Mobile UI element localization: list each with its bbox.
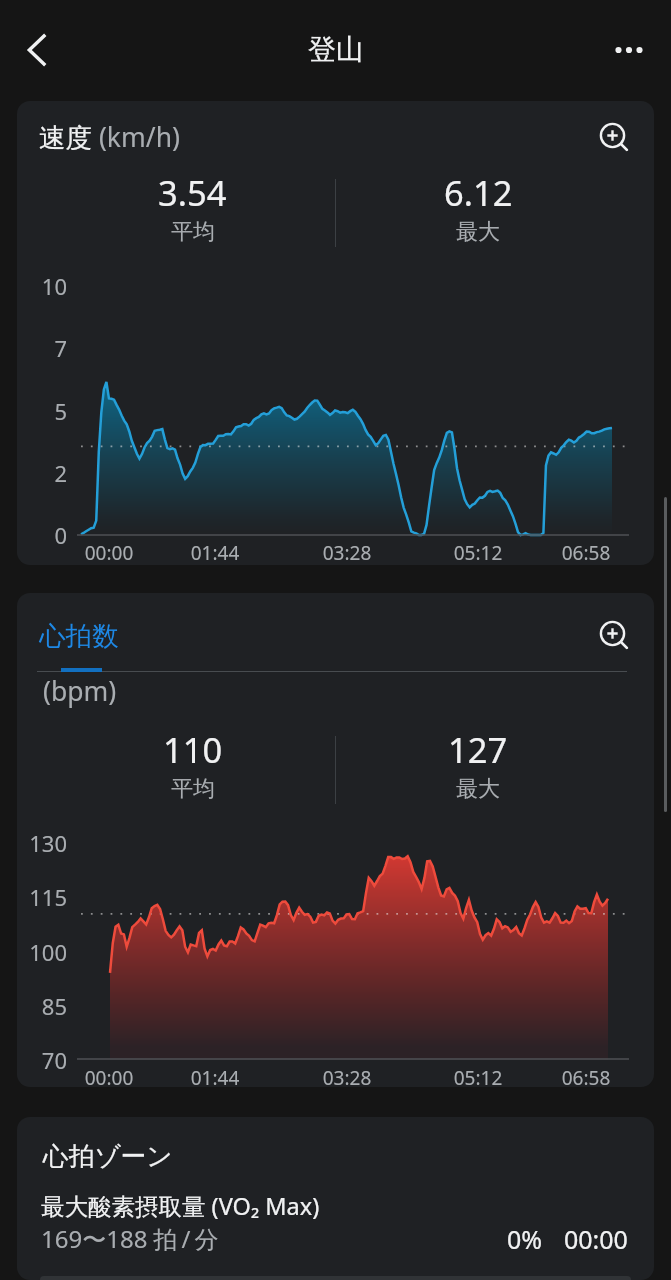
staticText: 70 <box>25 1045 67 1075</box>
staticText: 00:00 <box>69 540 149 565</box>
staticText: 0 <box>25 520 67 550</box>
staticText: 100 <box>25 937 67 967</box>
staticText: 最大 <box>456 775 500 803</box>
staticText: 169〜188 拍 / 分 <box>41 1222 219 1255</box>
staticText: 03:28 <box>307 1065 387 1087</box>
staticText: 127 <box>448 726 508 773</box>
staticText: 06:58 <box>546 540 626 565</box>
staticText: 03:28 <box>307 540 387 565</box>
staticText: 平均 <box>171 775 215 803</box>
button[interactable]: Back <box>11 24 63 76</box>
staticText: 登山 <box>308 32 364 67</box>
button[interactable]: More options <box>603 24 655 76</box>
staticText: 3.54 <box>158 169 227 216</box>
staticText: 110 <box>163 726 223 773</box>
staticText: 6.12 <box>444 169 513 216</box>
staticText: 00:00 <box>69 1065 149 1087</box>
staticText: 85 <box>25 991 67 1021</box>
staticText: 2 <box>25 458 67 488</box>
staticText: 最大 <box>456 218 500 246</box>
staticText: 01:44 <box>175 1065 255 1087</box>
staticText: 速度 <box>39 121 92 154</box>
staticText: 平均 <box>171 218 215 246</box>
staticText: 5 <box>25 396 67 426</box>
staticText: 05:12 <box>438 540 518 565</box>
staticText: 心拍ゾーン <box>43 1140 173 1172</box>
staticText: (km/h) <box>92 119 180 155</box>
staticText: 00:00 <box>564 1222 628 1256</box>
button[interactable]: Zoom in <box>590 113 638 161</box>
staticText: 7 <box>25 333 67 363</box>
button[interactable]: 心拍数 <box>39 619 119 652</box>
staticText: 06:58 <box>546 1065 626 1087</box>
button[interactable]: Zoom in <box>590 611 638 659</box>
staticText: 10 <box>25 271 67 301</box>
staticText: (bpm) <box>43 673 117 709</box>
staticText: 0% <box>507 1222 543 1256</box>
staticText: 130 <box>25 828 67 858</box>
staticText: 05:12 <box>438 1065 518 1087</box>
staticText: 最大酸素摂取量 (VO₂ Max) <box>41 1190 320 1222</box>
staticText: 115 <box>25 882 67 912</box>
staticText: 01:44 <box>175 540 255 565</box>
